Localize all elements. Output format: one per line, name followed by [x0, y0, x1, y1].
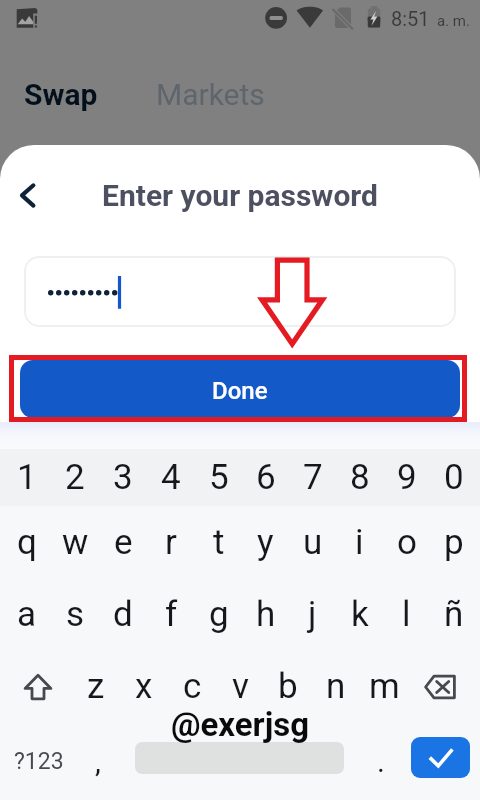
staticText: g	[209, 594, 229, 635]
button[interactable]	[24, 256, 456, 327]
button[interactable]: d	[99, 578, 147, 650]
button[interactable]: i	[336, 506, 383, 578]
staticText: y	[257, 522, 274, 563]
staticText: ,	[95, 744, 101, 779]
button[interactable]: 2	[51, 449, 99, 506]
staticText: o	[397, 522, 417, 563]
staticText: d	[113, 594, 133, 635]
button[interactable]: j	[289, 578, 336, 650]
staticText: ?123	[14, 748, 64, 775]
staticText: n	[326, 666, 346, 707]
button[interactable]: Space	[135, 742, 344, 774]
staticText: j	[308, 594, 317, 635]
staticText: 7	[303, 457, 323, 498]
staticText: Done	[212, 377, 268, 405]
button[interactable]: q	[3, 506, 51, 578]
staticText: .	[377, 744, 385, 779]
button[interactable]: 6	[242, 449, 289, 506]
button[interactable]: ,	[76, 722, 120, 800]
button[interactable]: Markets	[156, 77, 265, 112]
button[interactable]: Enter	[411, 737, 470, 778]
staticText: r	[165, 522, 177, 563]
staticText: @exerjsg	[0, 705, 480, 744]
staticText: 2	[65, 457, 85, 498]
staticText: v	[232, 666, 249, 707]
button[interactable]: z	[72, 650, 120, 722]
staticText: 8	[350, 457, 370, 498]
staticText: c	[183, 666, 202, 707]
button[interactable]: w	[51, 506, 99, 578]
button[interactable]: g	[195, 578, 242, 650]
button[interactable]: l	[383, 578, 430, 650]
button[interactable]: e	[99, 506, 147, 578]
button[interactable]: u	[289, 506, 336, 578]
button[interactable]: h	[242, 578, 289, 650]
staticText: z	[87, 666, 105, 707]
button[interactable]: 8	[336, 449, 383, 506]
button[interactable]: Shift	[0, 650, 72, 722]
button[interactable]: f	[147, 578, 195, 650]
staticText: p	[444, 522, 464, 563]
staticText: 6	[256, 457, 276, 498]
button[interactable]: 4	[147, 449, 195, 506]
button[interactable]: r	[147, 506, 195, 578]
staticText: q	[17, 522, 37, 563]
staticText: 5	[209, 457, 229, 498]
button[interactable]: o	[383, 506, 430, 578]
staticText: 3	[113, 457, 133, 498]
button[interactable]: b	[264, 650, 312, 722]
staticText: f	[165, 594, 178, 635]
button[interactable]: Swap	[24, 77, 98, 112]
button[interactable]: 7	[289, 449, 336, 506]
button[interactable]: y	[242, 506, 289, 578]
staticText: a	[17, 594, 37, 635]
button[interactable]: v	[216, 650, 264, 722]
staticText: 8:51	[391, 7, 430, 30]
staticText: u	[303, 522, 323, 563]
staticText: 1	[17, 457, 37, 498]
button[interactable]: t	[195, 506, 242, 578]
staticText: w	[62, 522, 89, 563]
button[interactable]: 5	[195, 449, 242, 506]
staticText: x	[135, 666, 153, 707]
staticText: ñ	[444, 594, 464, 635]
button[interactable]: a	[3, 578, 51, 650]
button[interactable]: n	[312, 650, 360, 722]
button[interactable]: 9	[383, 449, 430, 506]
button[interactable]: ?123	[6, 722, 72, 800]
button[interactable]: p	[430, 506, 477, 578]
button[interactable]: Backspace	[408, 650, 480, 722]
button[interactable]: Done	[20, 360, 460, 418]
staticText: k	[351, 594, 369, 635]
button[interactable]: m	[360, 650, 408, 722]
staticText: e	[114, 522, 133, 563]
button[interactable]: 1	[3, 449, 51, 506]
staticText: i	[355, 522, 364, 563]
staticText: h	[256, 594, 276, 635]
staticText: b	[278, 666, 298, 707]
button[interactable]: 0	[430, 449, 477, 506]
button[interactable]: ñ	[430, 578, 477, 650]
staticText: s	[66, 594, 85, 635]
staticText: 0	[444, 457, 464, 498]
staticText: t	[213, 522, 225, 563]
button[interactable]: Back	[6, 174, 50, 218]
button[interactable]: .	[360, 722, 402, 800]
button[interactable]: k	[336, 578, 383, 650]
staticText: l	[402, 594, 411, 635]
button[interactable]: 3	[99, 449, 147, 506]
button[interactable]: s	[51, 578, 99, 650]
button[interactable]: c	[168, 650, 216, 722]
staticText: 4	[161, 457, 181, 498]
staticText: 9	[397, 457, 417, 498]
staticText: Enter your password	[0, 178, 480, 213]
staticText: m	[369, 666, 400, 707]
staticText: a. m.	[437, 12, 470, 30]
button[interactable]: x	[120, 650, 168, 722]
